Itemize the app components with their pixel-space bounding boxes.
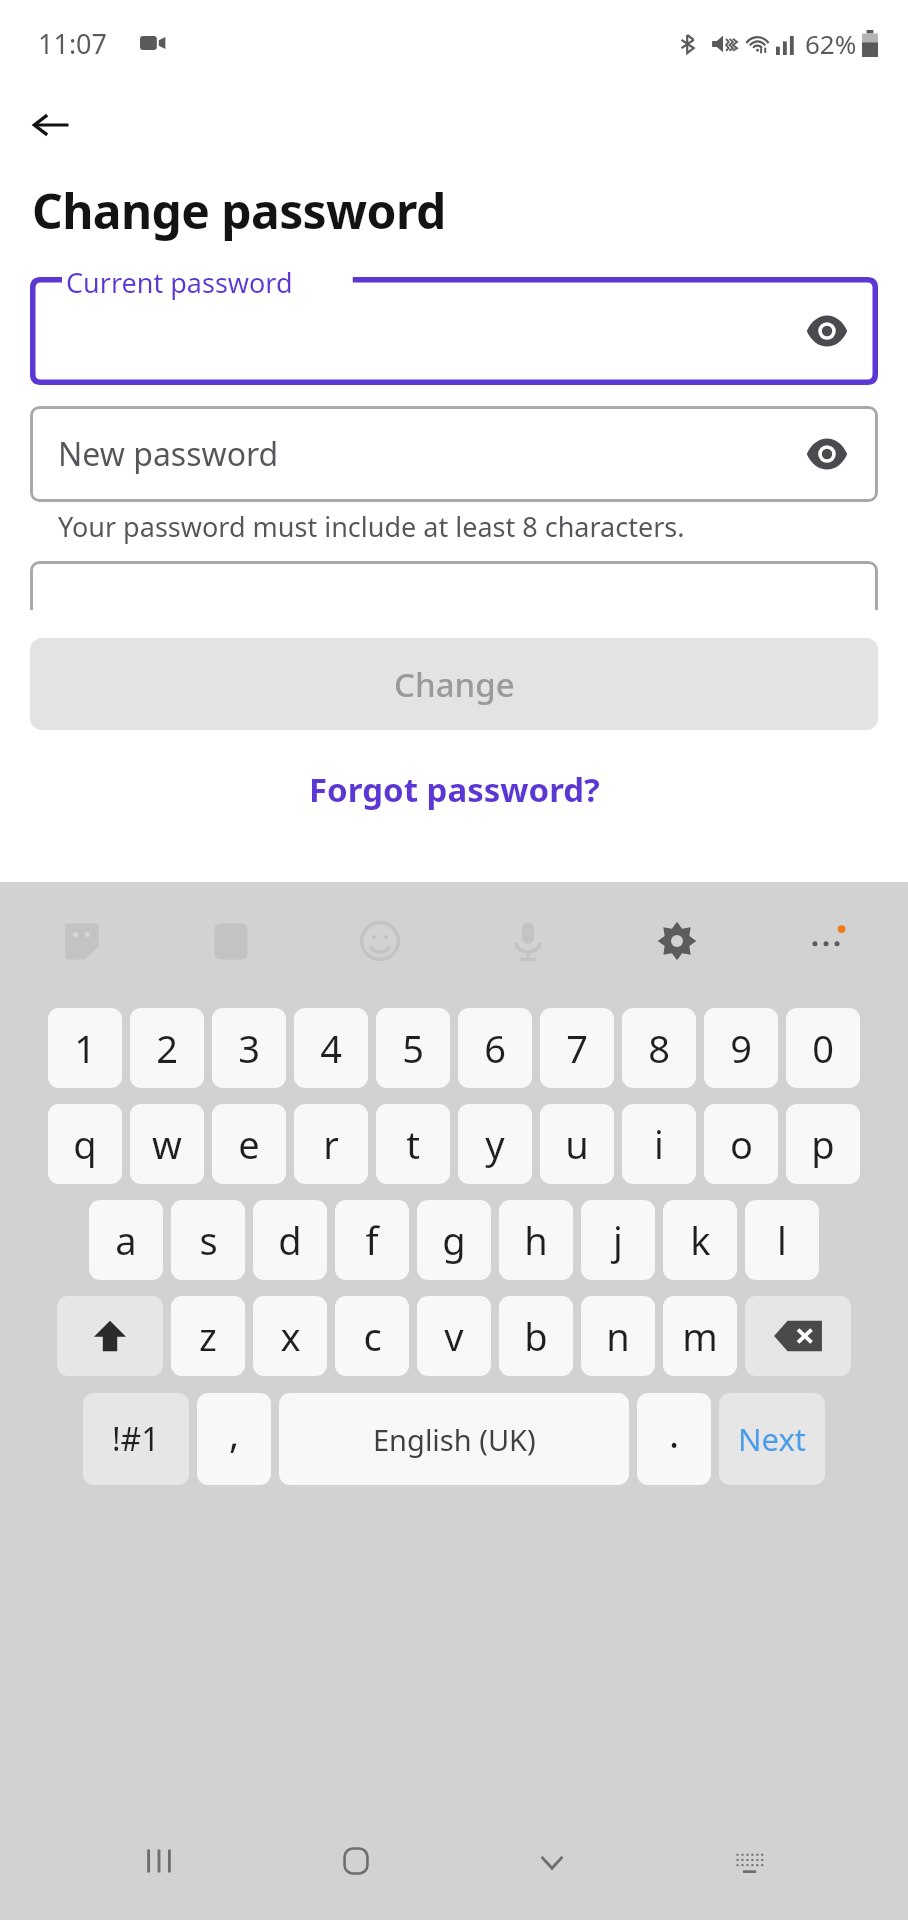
staticText: z (199, 1310, 217, 1362)
button[interactable]: 8 (622, 1008, 696, 1088)
staticText: i (654, 1118, 664, 1170)
button[interactable]: l (745, 1200, 819, 1280)
button[interactable]: 0 (786, 1008, 860, 1088)
button[interactable]: 6 (458, 1008, 532, 1088)
button[interactable]: Forgot password? (289, 759, 620, 820)
staticText: q (73, 1118, 97, 1170)
button[interactable]: More options (790, 905, 862, 977)
staticText: v (444, 1310, 464, 1362)
staticText: 62% (805, 26, 857, 61)
button[interactable]: New password (30, 406, 878, 502)
staticText: 2 (156, 1022, 178, 1074)
staticText: j (613, 1214, 623, 1266)
button[interactable]: Switch keyboard (710, 1822, 788, 1900)
staticText: o (730, 1118, 753, 1170)
staticText: 5 (402, 1022, 424, 1074)
button[interactable]: Shift (57, 1296, 163, 1376)
staticText: 11:07 (38, 25, 108, 62)
button[interactable]: !#1 (83, 1393, 189, 1485)
button[interactable]: a (89, 1200, 163, 1280)
button[interactable]: g (417, 1200, 491, 1280)
staticText: n (606, 1310, 630, 1362)
staticText: e (238, 1118, 260, 1170)
button[interactable]: n (581, 1296, 655, 1376)
button[interactable]: 1 (48, 1008, 122, 1088)
button[interactable]: w (130, 1104, 204, 1184)
staticText: b (524, 1310, 548, 1362)
button[interactable]: . (637, 1393, 711, 1485)
button[interactable]: z (171, 1296, 245, 1376)
staticText: u (565, 1118, 589, 1170)
staticText: a (115, 1214, 137, 1266)
button[interactable]: u (540, 1104, 614, 1184)
staticText: w (152, 1118, 182, 1170)
button[interactable]: 4 (294, 1008, 368, 1088)
staticText: k (690, 1214, 711, 1266)
button[interactable]: o (704, 1104, 778, 1184)
button[interactable]: q (48, 1104, 122, 1184)
staticText: 7 (566, 1022, 588, 1074)
staticText: 8 (648, 1022, 670, 1074)
staticText: Forgot password? (309, 767, 600, 812)
button[interactable]: Show new password (796, 423, 858, 485)
button[interactable]: j (581, 1200, 655, 1280)
staticText: !#1 (112, 1417, 160, 1461)
staticText: h (524, 1214, 548, 1266)
button[interactable]: 5 (376, 1008, 450, 1088)
staticText: s (199, 1214, 218, 1266)
staticText: c (363, 1310, 382, 1362)
button[interactable]: Back (18, 92, 84, 158)
staticText: g (442, 1214, 466, 1266)
staticText: New password (58, 432, 279, 476)
button[interactable]: Emoji (344, 905, 416, 977)
staticText: 3 (238, 1022, 260, 1074)
staticText: 1 (74, 1022, 96, 1074)
button[interactable]: 9 (704, 1008, 778, 1088)
button[interactable]: k (663, 1200, 737, 1280)
staticText: l (777, 1214, 787, 1266)
button[interactable]: 2 (130, 1008, 204, 1088)
button[interactable]: f (335, 1200, 409, 1280)
staticText: , (229, 1407, 240, 1459)
staticText: Change password (32, 178, 446, 243)
staticText: f (365, 1214, 379, 1266)
button[interactable]: p (786, 1104, 860, 1184)
button[interactable] (30, 561, 878, 657)
button[interactable]: English (UK) (279, 1393, 629, 1485)
button[interactable]: m (663, 1296, 737, 1376)
button[interactable]: h (499, 1200, 573, 1280)
button[interactable]: Home (317, 1822, 395, 1900)
staticText: m (682, 1310, 718, 1362)
button[interactable]: 3 (212, 1008, 286, 1088)
button[interactable]: Change (30, 638, 878, 730)
button[interactable]: x (253, 1296, 327, 1376)
button[interactable]: e (212, 1104, 286, 1184)
staticText: y (485, 1118, 505, 1170)
button[interactable]: v (417, 1296, 491, 1376)
button[interactable]: t (376, 1104, 450, 1184)
staticText: Current password (66, 264, 293, 301)
staticText: 9 (730, 1022, 752, 1074)
button[interactable]: s (171, 1200, 245, 1280)
button[interactable]: d (253, 1200, 327, 1280)
button[interactable]: GIF (195, 905, 267, 977)
staticText: d (278, 1214, 302, 1266)
button[interactable]: Hide keyboard (513, 1822, 591, 1900)
button[interactable]: b (499, 1296, 573, 1376)
button[interactable]: Next (719, 1393, 825, 1485)
button[interactable]: Stickers (46, 905, 118, 977)
staticText: 6 (484, 1022, 506, 1074)
staticText: p (811, 1118, 835, 1170)
button[interactable]: Voice input (492, 905, 564, 977)
button[interactable]: Keyboard settings (641, 905, 713, 977)
button[interactable]: 7 (540, 1008, 614, 1088)
button[interactable]: Show current password (796, 300, 858, 362)
button[interactable]: Backspace (745, 1296, 851, 1376)
button[interactable]: Recent apps (120, 1822, 198, 1900)
staticText: Change (394, 662, 515, 707)
button[interactable]: i (622, 1104, 696, 1184)
button[interactable]: c (335, 1296, 409, 1376)
button[interactable]: y (458, 1104, 532, 1184)
button[interactable]: , (197, 1393, 271, 1485)
button[interactable]: r (294, 1104, 368, 1184)
